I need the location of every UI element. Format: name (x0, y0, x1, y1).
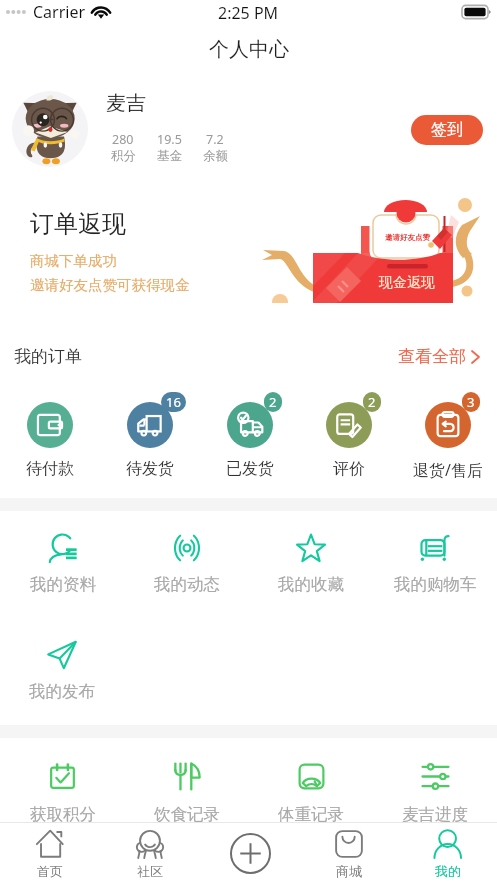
staticText: 获取积分 (30, 804, 96, 825)
button[interactable]: 体重记录 (249, 738, 373, 845)
staticText: 评价 (333, 459, 365, 479)
button[interactable]: 社区 (100, 823, 200, 879)
staticText: 邀请好友点赞 (385, 233, 430, 242)
staticText: 16 (166, 393, 181, 411)
staticText: 首页 (37, 863, 63, 879)
button[interactable]: 签到 (411, 115, 483, 145)
staticText: 订单返现 (30, 209, 126, 239)
staticText: 我的订单 (14, 346, 82, 367)
button[interactable]: 我的购物车 (373, 511, 497, 618)
button[interactable]: 麦吉进度 (373, 738, 497, 845)
button[interactable]: 2 (200, 376, 299, 479)
button[interactable]: 我的发布 (0, 618, 124, 725)
staticText: 现金返现 (379, 274, 435, 292)
button[interactable]: 16 (100, 376, 200, 479)
button[interactable]: 我的动态 (125, 511, 249, 618)
staticText: 7.2 (206, 131, 224, 148)
staticText: 我的购物车 (394, 574, 477, 595)
staticText: 余额 (203, 148, 228, 164)
button[interactable]: 饮食记录 (125, 738, 249, 845)
staticText: 2 (269, 393, 277, 411)
staticText: 签到 (431, 120, 463, 140)
staticText: 280 (112, 131, 134, 148)
staticText: 基金 (157, 148, 182, 164)
button[interactable]: 我的资料 (0, 511, 125, 618)
staticText: 我的动态 (154, 574, 220, 595)
button[interactable]: 查看全部 (398, 346, 497, 367)
button[interactable]: 2 (299, 376, 398, 479)
button[interactable]: 首页 (0, 823, 100, 879)
staticText: 退货/售后 (413, 459, 483, 481)
staticText: 邀请好友点赞可获得现金 (30, 276, 190, 294)
staticText: 2:25 PM (218, 2, 279, 24)
staticText: 麦吉进度 (402, 804, 468, 825)
staticText: 我的资料 (30, 574, 96, 595)
button[interactable]: 待付款 (0, 376, 100, 479)
staticText: 麦吉 (106, 91, 146, 116)
staticText: 待发货 (126, 459, 174, 479)
staticText: 已发货 (226, 459, 274, 479)
staticText: 我的 (435, 863, 461, 879)
staticText: 体重记录 (278, 804, 344, 825)
button[interactable]: 订单返现 (14, 196, 483, 303)
button[interactable]: Add (228, 831, 272, 875)
button[interactable]: 3 (398, 376, 497, 481)
staticText: 2 (368, 393, 376, 411)
button[interactable]: 获取积分 (0, 738, 125, 845)
staticText: 积分 (111, 148, 136, 164)
staticText: 社区 (137, 863, 163, 879)
staticText: 3 (467, 393, 475, 411)
button[interactable]: 商城 (299, 823, 398, 879)
staticText: 个人中心 (209, 37, 289, 62)
button[interactable]: 我的 (398, 823, 497, 879)
staticText: 待付款 (26, 459, 74, 479)
staticText: 饮食记录 (154, 804, 220, 825)
staticText: 19.5 (157, 131, 182, 148)
staticText: 商城 (336, 863, 362, 879)
staticText: 我的收藏 (278, 574, 344, 595)
staticText: 商城下单成功 (30, 252, 117, 270)
staticText: 查看全部 (398, 346, 466, 367)
staticText: Carrier (33, 1, 86, 23)
button[interactable]: 我的收藏 (249, 511, 373, 618)
staticText: 我的发布 (29, 681, 95, 702)
